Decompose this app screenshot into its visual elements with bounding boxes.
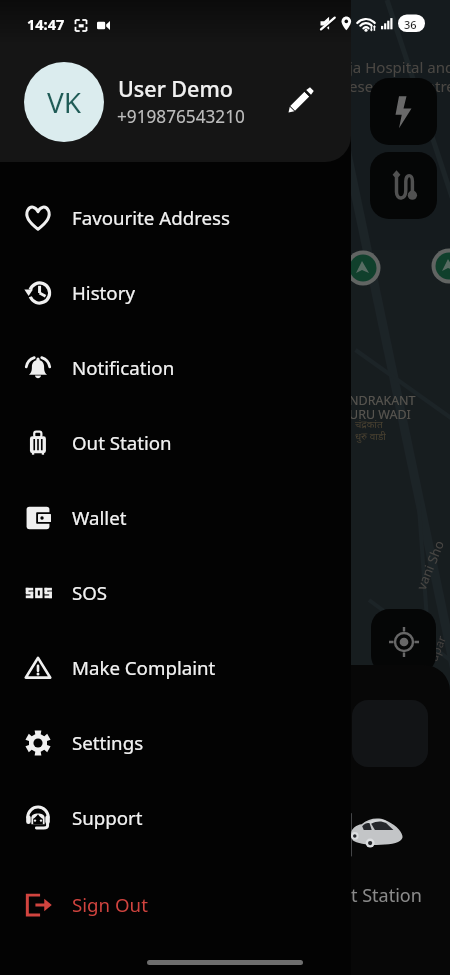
staticText: ja Hospital and esearch Centre <box>349 57 450 96</box>
button[interactable]: Notification <box>0 330 351 405</box>
staticText: SOS <box>72 580 108 605</box>
staticText: Favourite Address <box>72 205 230 230</box>
staticText: Wallet <box>72 505 127 530</box>
staticText: Make Complaint <box>72 655 216 680</box>
staticText: +919876543210 <box>117 105 245 128</box>
button[interactable]: Make Complaint <box>0 630 351 705</box>
staticText: NDRAKANT URU WADI <box>349 392 416 423</box>
button[interactable]: Out Station <box>0 405 351 480</box>
button[interactable]: Power <box>370 78 437 145</box>
staticText: Sign Out <box>72 892 148 917</box>
staticText: Out Station <box>72 430 172 455</box>
staticText: vani Sho <box>412 537 448 592</box>
staticText: 36 <box>404 17 417 32</box>
staticText: t Station <box>351 883 422 908</box>
button[interactable]: Route <box>370 152 437 219</box>
button[interactable]: My location <box>371 609 436 674</box>
button[interactable]: Edit profile <box>283 83 318 118</box>
staticText: History <box>72 280 135 305</box>
button[interactable]: Favourite Address <box>0 180 351 255</box>
staticText: apar <box>425 633 449 663</box>
staticText: 14:47 <box>27 14 65 34</box>
staticText: Settings <box>72 730 144 755</box>
button[interactable]: Support <box>0 780 351 855</box>
button[interactable]: History <box>0 255 351 330</box>
staticText: User Demo <box>118 74 233 103</box>
staticText: VK <box>47 83 82 121</box>
staticText: चंद्रकांत धुरु वाडी <box>355 417 386 443</box>
button[interactable]: Settings <box>0 705 351 780</box>
button[interactable]: Sign Out <box>0 855 351 942</box>
staticText: Support <box>72 805 143 830</box>
button[interactable]: SOS <box>0 555 351 630</box>
button[interactable]: Wallet <box>0 480 351 555</box>
staticText: Notification <box>72 355 175 380</box>
